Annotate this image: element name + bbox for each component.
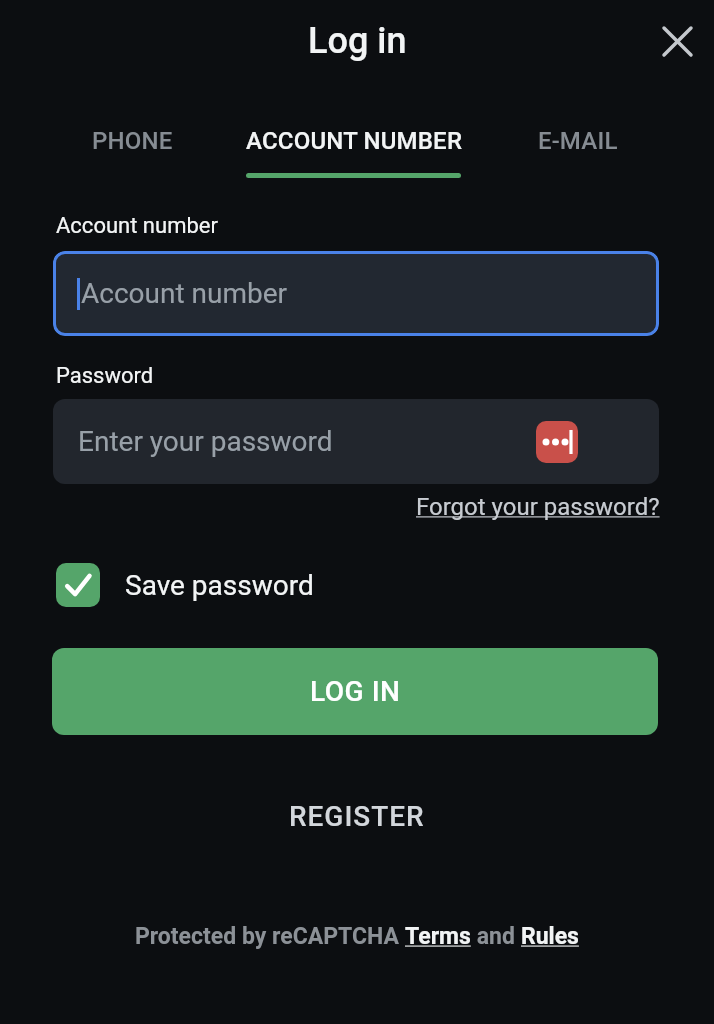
button[interactable]: ACCOUNT NUMBER <box>214 124 494 157</box>
staticText: PHONE <box>92 127 173 155</box>
staticText: Protected by reCAPTCHA <box>135 923 405 950</box>
button[interactable]: Save password <box>56 563 314 607</box>
staticText: Terms <box>405 923 471 950</box>
staticText: E-MAIL <box>538 127 618 155</box>
staticText: Password <box>56 363 154 389</box>
button[interactable]: E-MAIL <box>438 124 714 157</box>
staticText: Rules <box>521 923 579 950</box>
button[interactable] <box>654 18 700 64</box>
button[interactable]: Rules <box>521 923 579 950</box>
staticText: Forgot your password? <box>416 493 660 521</box>
staticText: LOG IN <box>310 675 401 708</box>
staticText: Enter your password <box>78 425 333 458</box>
staticText: REGISTER <box>289 800 425 832</box>
button[interactable]: Terms <box>405 923 471 950</box>
button[interactable]: REGISTER <box>279 796 435 836</box>
button[interactable]: PHONE <box>0 124 272 157</box>
staticText: Save password <box>125 569 314 602</box>
button[interactable]: Forgot your password? <box>0 492 660 522</box>
staticText: Account number <box>56 213 218 239</box>
button[interactable]: Enter your password <box>53 399 659 484</box>
staticText: Account number <box>81 277 288 310</box>
staticText: ACCOUNT NUMBER <box>246 127 463 155</box>
staticText: Log in <box>308 20 407 62</box>
button[interactable]: LOG IN <box>52 648 658 735</box>
staticText: and <box>471 923 521 950</box>
button[interactable]: Account number <box>53 251 659 336</box>
